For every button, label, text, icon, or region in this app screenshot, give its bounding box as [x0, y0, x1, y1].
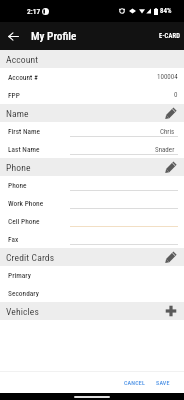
button[interactable]: E-CARD [153, 26, 184, 46]
staticText: 2:17 [27, 7, 41, 16]
button[interactable]: Back [0, 23, 26, 49]
other: Edit [164, 106, 178, 120]
staticText: My Profile [31, 30, 77, 43]
button[interactable]: FPP [0, 86, 184, 104]
staticText: Primary [8, 271, 31, 280]
staticText: E-CARD [159, 32, 181, 40]
button[interactable]: Vehicles [0, 302, 184, 320]
button[interactable]: CANCEL [119, 374, 151, 391]
staticText: SAVE [156, 379, 170, 386]
button[interactable]: Name [0, 104, 184, 122]
staticText: Last Name [8, 145, 40, 154]
button[interactable]: Credit Cards [0, 248, 184, 266]
button[interactable]: Phone [0, 158, 184, 176]
button[interactable]: Secondary [0, 284, 184, 302]
button[interactable]: Fax [0, 230, 184, 248]
staticText: Work Phone [8, 199, 44, 208]
button[interactable]: Account # [0, 68, 184, 86]
staticText: 0 [174, 91, 178, 99]
other: Edit [164, 250, 178, 264]
staticText: FPP [8, 91, 20, 100]
staticText: CANCEL [124, 379, 146, 386]
button[interactable]: Last Name [0, 140, 184, 158]
staticText: Snader [155, 146, 175, 154]
staticText: First Name [8, 127, 41, 136]
other: Add [164, 304, 178, 318]
staticText: Credit Cards [6, 252, 55, 263]
staticText: Chris [160, 128, 175, 136]
button[interactable]: Primary [0, 266, 184, 284]
other: Edit [164, 160, 178, 174]
button[interactable]: Phone [0, 176, 184, 194]
staticText: Vehicles [6, 306, 39, 317]
button[interactable]: Account [0, 50, 184, 68]
button[interactable]: Cell Phone [0, 212, 184, 230]
staticText: 84% [160, 7, 172, 15]
staticText: 100004 [157, 73, 178, 81]
staticText: Account [6, 54, 39, 65]
staticText: Secondary [8, 289, 39, 298]
button[interactable]: Work Phone [0, 194, 184, 212]
button[interactable]: First Name [0, 122, 184, 140]
staticText: Fax [8, 235, 19, 244]
staticText: Name [6, 108, 29, 119]
staticText: Cell Phone [8, 217, 40, 226]
staticText: Account # [8, 73, 38, 82]
staticText: Phone [8, 181, 27, 190]
staticText: Phone [6, 162, 31, 173]
button[interactable]: SAVE [151, 374, 175, 391]
